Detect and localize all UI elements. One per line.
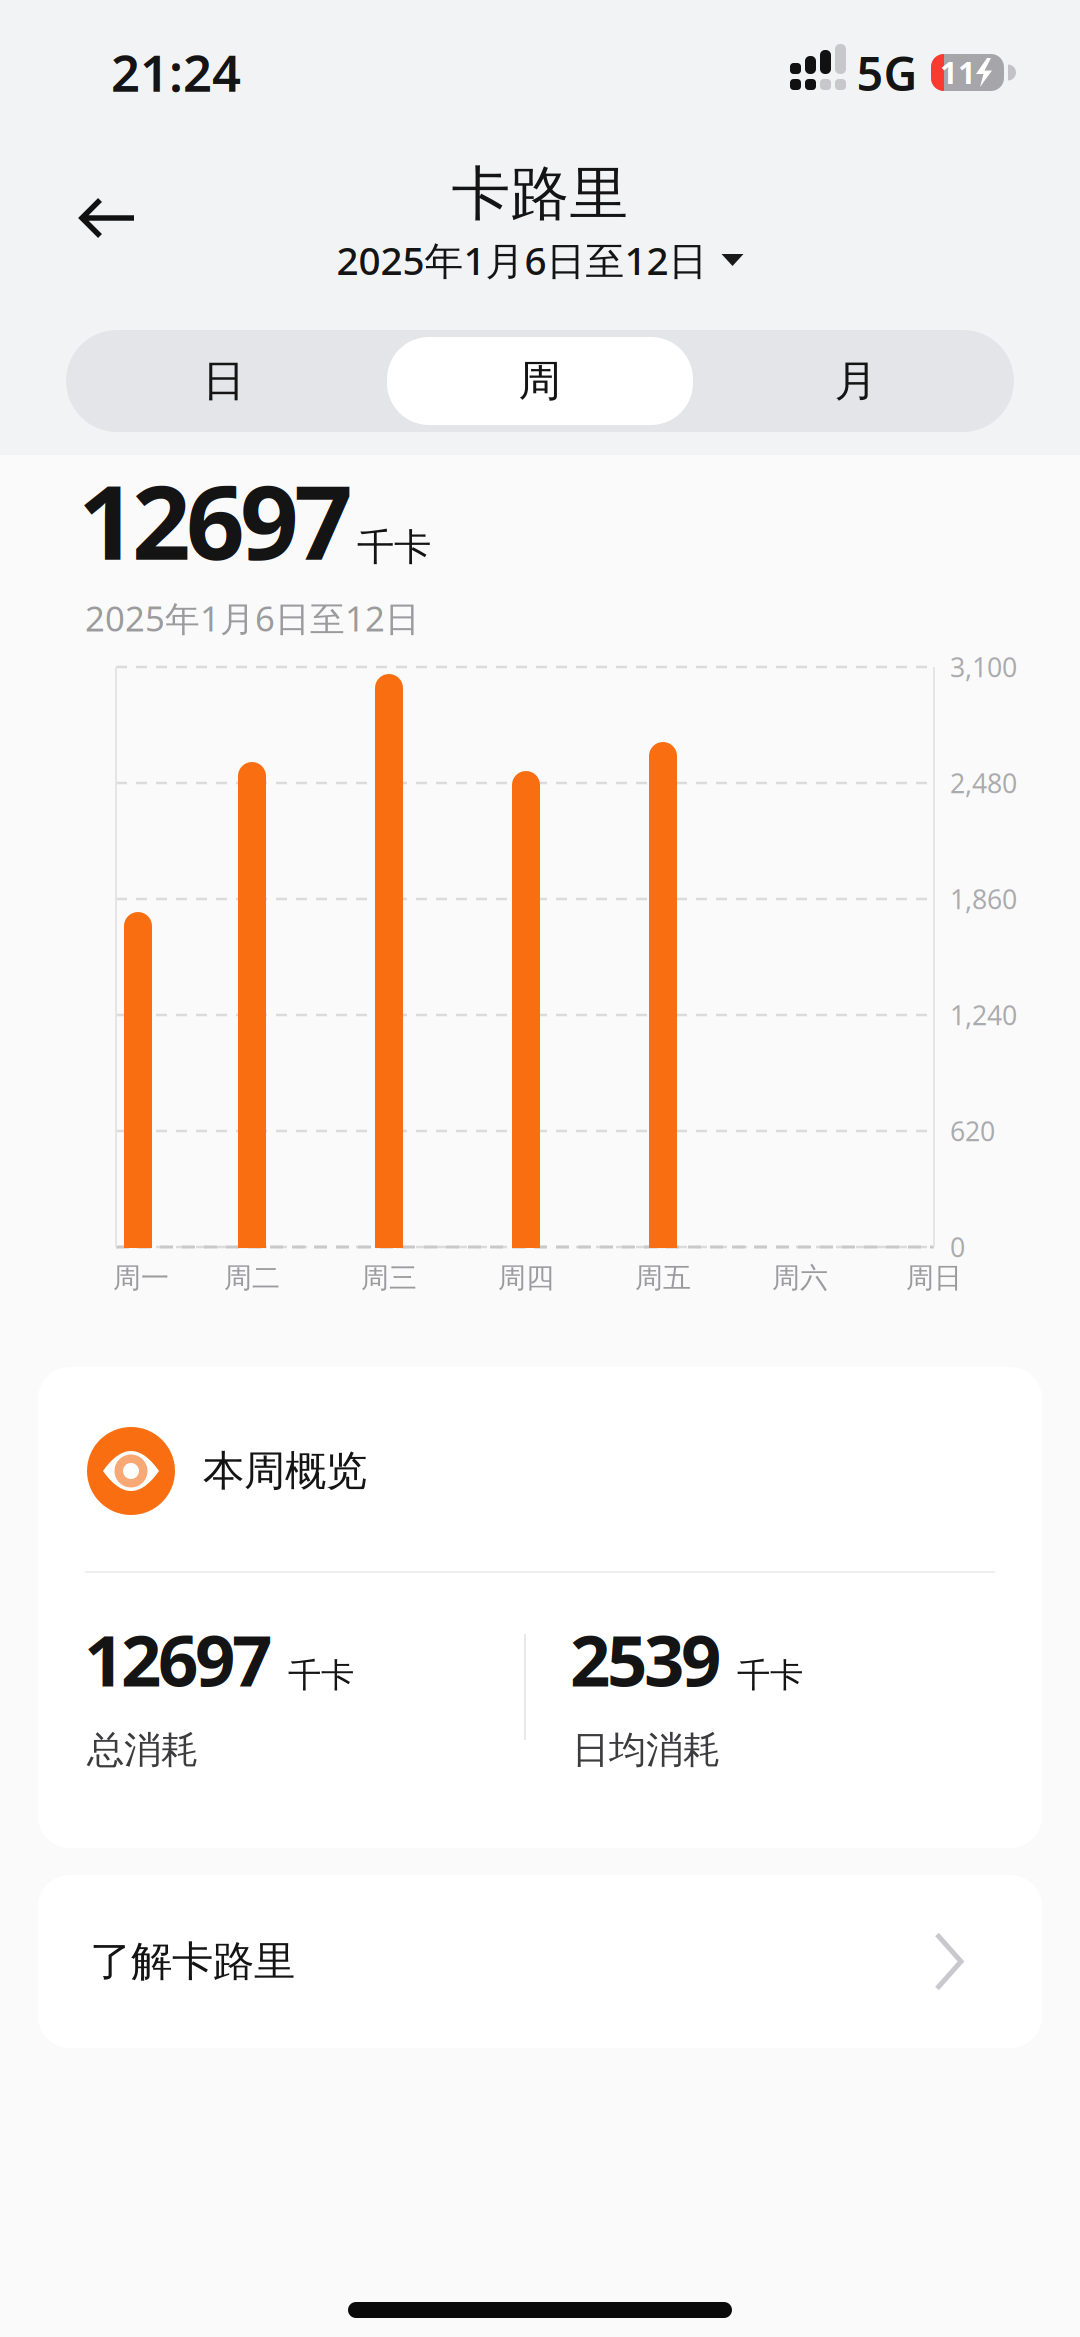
staticText: 本周概览 xyxy=(203,1446,367,1496)
staticText: 周日 xyxy=(906,1261,962,1295)
staticText: 2,480 xyxy=(950,765,1017,801)
staticText: 1,860 xyxy=(950,881,1017,917)
staticText: 2539 xyxy=(570,1612,721,1706)
staticText: 12697 xyxy=(84,1612,272,1706)
staticText: 5G xyxy=(856,42,917,104)
staticText: 12697 xyxy=(78,452,353,588)
staticText: 周一 xyxy=(113,1261,169,1295)
staticText: 3,100 xyxy=(950,649,1017,685)
staticText: 11 xyxy=(940,52,976,92)
staticText: 周六 xyxy=(772,1261,828,1295)
staticText: 卡路里 xyxy=(451,158,628,230)
staticText: 千卡 xyxy=(288,1655,354,1696)
staticText: 2025年1月6日至12日 xyxy=(85,595,420,641)
staticText: 千卡 xyxy=(357,524,431,570)
staticText: 千卡 xyxy=(737,1655,803,1696)
staticText: 周 xyxy=(518,355,561,407)
button[interactable]: 2025年1月6日至12日 xyxy=(336,234,743,286)
button[interactable]: 日 xyxy=(74,330,374,432)
staticText: 日均消耗 xyxy=(572,1727,720,1773)
staticText: 月 xyxy=(834,355,877,407)
staticText: 620 xyxy=(950,1113,995,1149)
button[interactable]: 月 xyxy=(706,330,1006,432)
staticText: 21:24 xyxy=(111,38,241,106)
staticText: 2025年1月6日至12日 xyxy=(336,234,707,286)
staticText: 周三 xyxy=(361,1261,417,1295)
staticText: 周五 xyxy=(635,1261,691,1295)
staticText: 了解卡路里 xyxy=(90,1936,295,1987)
staticText: 周四 xyxy=(498,1261,554,1295)
button[interactable]: 周 xyxy=(387,337,693,425)
staticText: 1,240 xyxy=(950,997,1017,1033)
staticText: 总消耗 xyxy=(87,1727,198,1773)
button[interactable]: 了解卡路里 xyxy=(38,1875,1042,2048)
staticText: 0 xyxy=(950,1229,965,1265)
staticText: 日 xyxy=(202,355,245,407)
staticText: 周二 xyxy=(224,1261,280,1295)
button[interactable]: Back xyxy=(70,198,140,238)
